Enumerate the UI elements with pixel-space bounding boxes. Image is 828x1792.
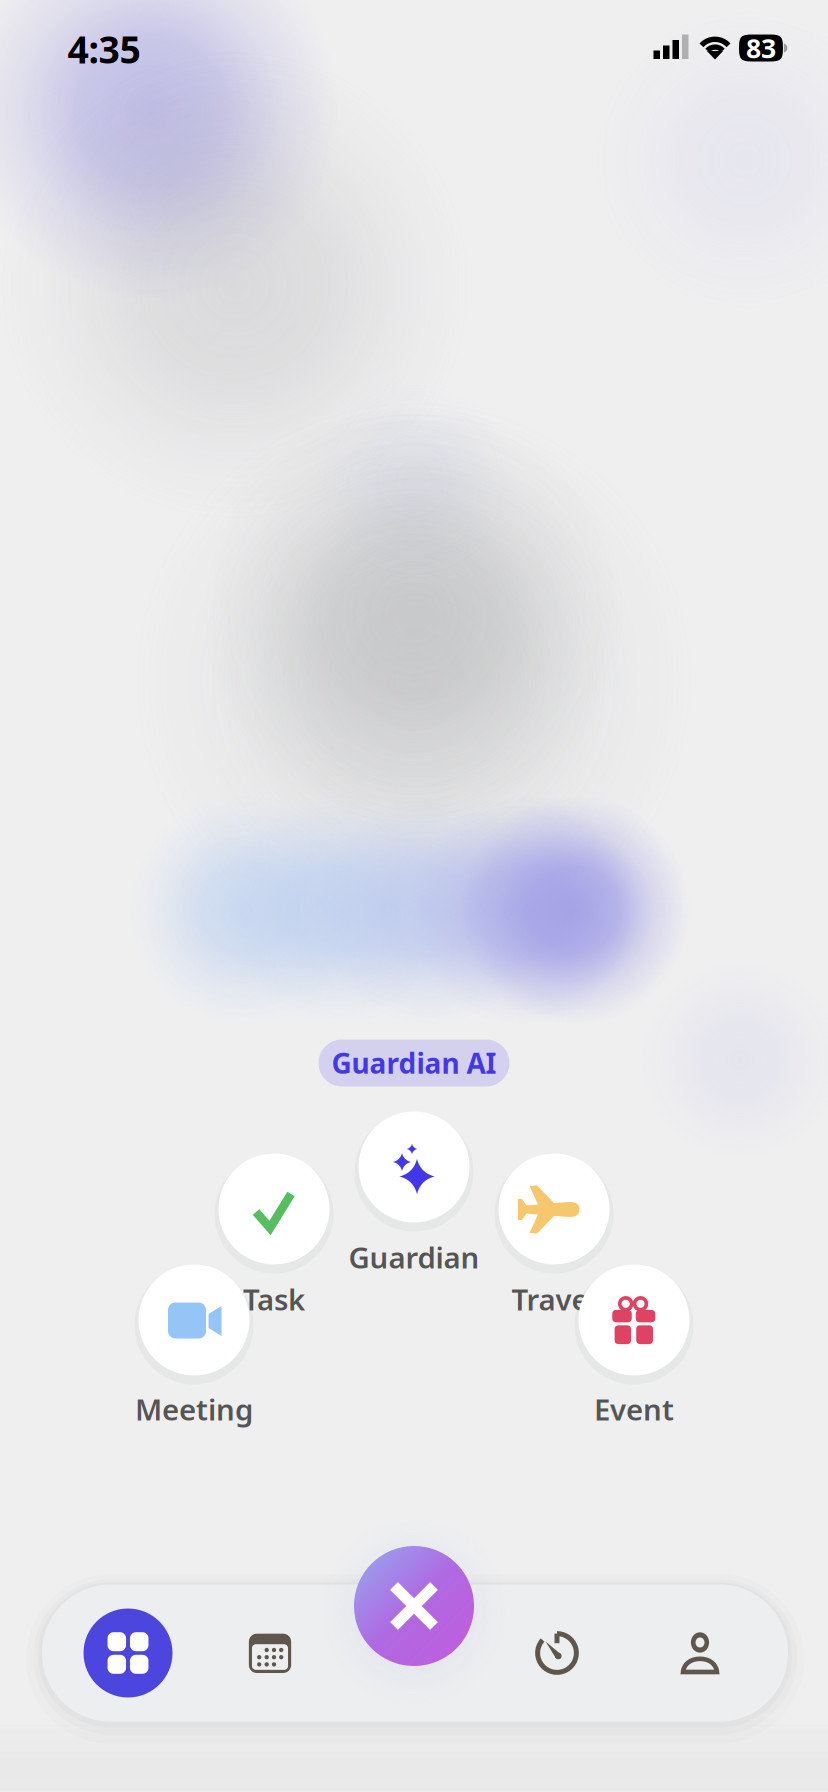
staticText: Task (243, 1279, 305, 1318)
button[interactable]: Timer (505, 1593, 609, 1713)
staticText: 4:35 (67, 24, 140, 74)
staticText: Guardian (348, 1237, 479, 1276)
button[interactable]: Event (572, 1258, 696, 1382)
button[interactable]: Close quick add menu (354, 1546, 474, 1666)
staticText: Meeting (135, 1389, 253, 1428)
button[interactable]: Guardian AI (318, 1039, 509, 1086)
staticText: Guardian AI (331, 1044, 496, 1082)
button[interactable]: Travel (492, 1147, 616, 1271)
button[interactable]: Task (212, 1147, 336, 1271)
staticText: Event (594, 1389, 674, 1428)
button[interactable]: Guardian (352, 1105, 476, 1229)
button[interactable]: Meeting (132, 1258, 256, 1382)
staticText: 83 (746, 30, 776, 66)
staticText: Travel (511, 1279, 596, 1318)
button[interactable]: Profile (648, 1593, 752, 1713)
button[interactable]: Calendar (218, 1593, 322, 1713)
button[interactable]: Dashboard (68, 1593, 188, 1713)
